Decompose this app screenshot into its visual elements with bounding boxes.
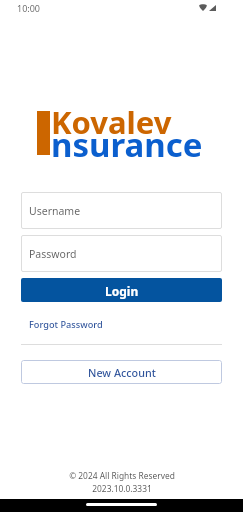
staticText: Password bbox=[29, 247, 77, 261]
staticText: nsurance bbox=[51, 122, 203, 167]
staticText: Username bbox=[29, 204, 81, 218]
button[interactable]: New Account bbox=[21, 360, 222, 384]
staticText: 2023.10.0.3331 bbox=[92, 483, 152, 494]
staticText: Login bbox=[105, 283, 139, 299]
button[interactable]: Forgot Password bbox=[23, 314, 109, 335]
staticText: © 2024 All Rights Reserved bbox=[69, 470, 175, 481]
button[interactable]: Username bbox=[21, 192, 222, 229]
other: Wi-Fi signal bbox=[199, 4, 207, 11]
other: Cellular signal bbox=[209, 5, 216, 11]
staticText: New Account bbox=[88, 365, 156, 380]
staticText: Forgot Password bbox=[29, 318, 103, 331]
staticText: Kovalev bbox=[51, 101, 172, 143]
button[interactable]: Login bbox=[21, 278, 222, 302]
button[interactable]: Password bbox=[21, 235, 222, 272]
staticText: 10:00 bbox=[17, 2, 41, 14]
